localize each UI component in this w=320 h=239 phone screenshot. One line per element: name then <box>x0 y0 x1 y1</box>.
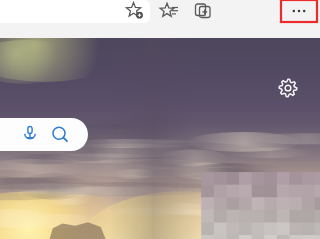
button[interactable]: Add to favorites <box>123 0 147 22</box>
button[interactable]: Page settings <box>277 77 299 99</box>
button[interactable]: Favorites <box>157 0 183 22</box>
button[interactable]: Collections <box>190 0 216 22</box>
button[interactable]: Search the web <box>0 118 88 151</box>
button[interactable]: Address bar <box>0 0 150 23</box>
button[interactable]: Settings and more <box>281 0 317 22</box>
